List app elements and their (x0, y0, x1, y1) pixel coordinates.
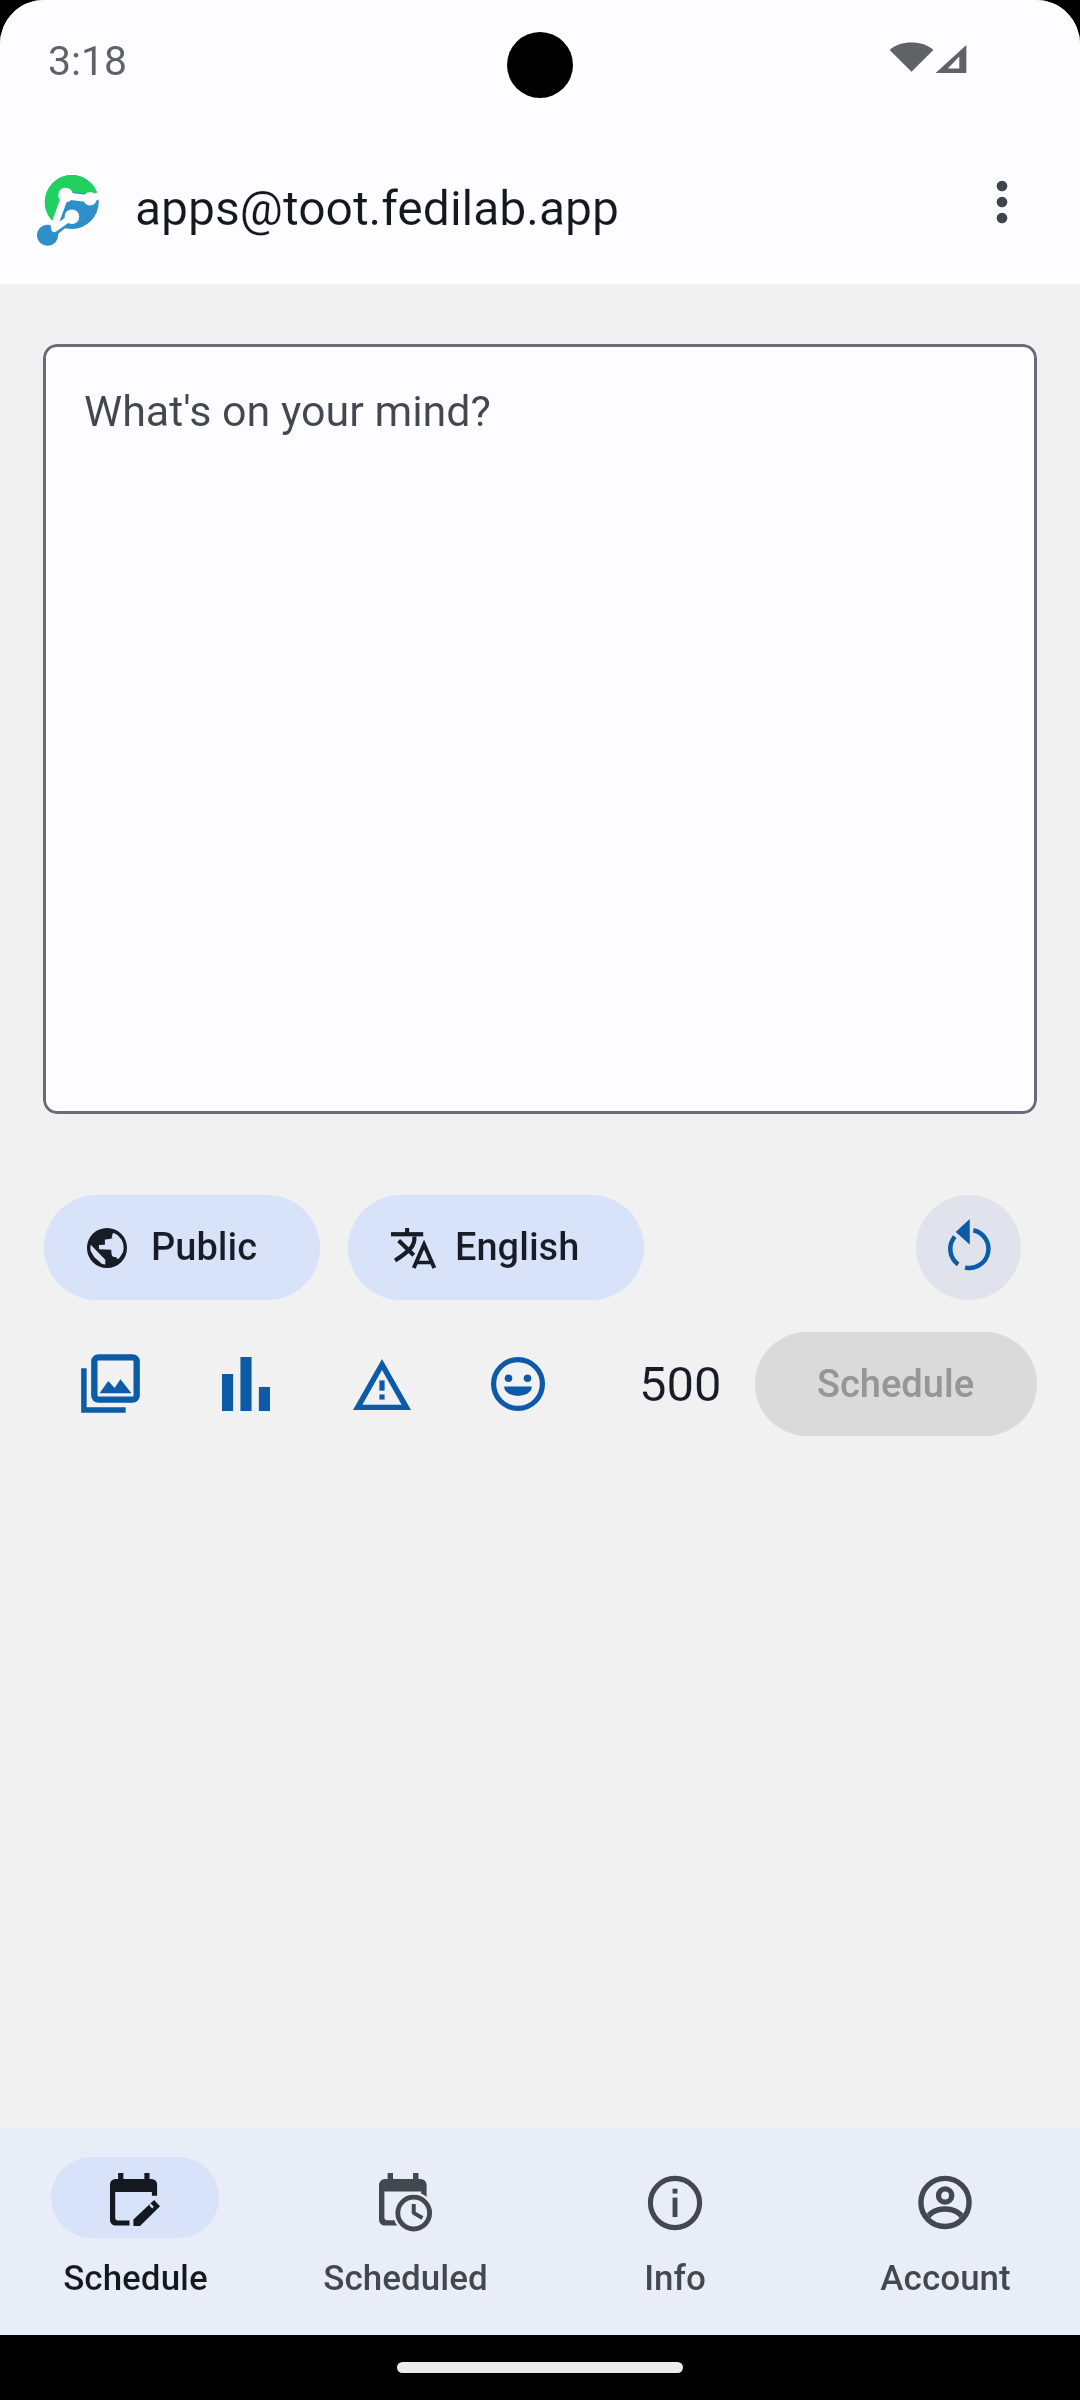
button[interactable]: Content warning (353, 1355, 411, 1413)
button[interactable]: Info (540, 2127, 810, 2299)
staticText: English (455, 1225, 580, 1270)
staticText: Schedule (817, 1362, 975, 1407)
button[interactable]: More options (946, 152, 1058, 264)
staticText: Scheduled (323, 2258, 488, 2299)
staticText: Public (151, 1225, 258, 1270)
staticText: What's on your mind? (84, 386, 491, 436)
staticText: Schedule (63, 2258, 208, 2299)
staticText: apps@toot.fedilab.app (135, 180, 619, 236)
staticText: 3:18 (48, 37, 128, 85)
button[interactable]: What's on your mind? (43, 344, 1037, 1114)
staticText: 500 (639, 1356, 722, 1413)
button[interactable]: Schedule (0, 2127, 270, 2299)
button[interactable]: Restore draft (916, 1195, 1021, 1300)
button[interactable]: Account (810, 2127, 1080, 2299)
button[interactable]: Schedule (755, 1332, 1037, 1436)
button[interactable]: Add media (81, 1355, 139, 1413)
button[interactable]: Add emoji (489, 1355, 547, 1413)
button[interactable]: Public (44, 1195, 320, 1300)
button[interactable]: English (348, 1195, 644, 1300)
button[interactable]: Add poll (217, 1355, 275, 1413)
button[interactable]: Scheduled (270, 2127, 540, 2299)
staticText: Account (880, 2258, 1011, 2299)
staticText: Info (644, 2258, 706, 2299)
